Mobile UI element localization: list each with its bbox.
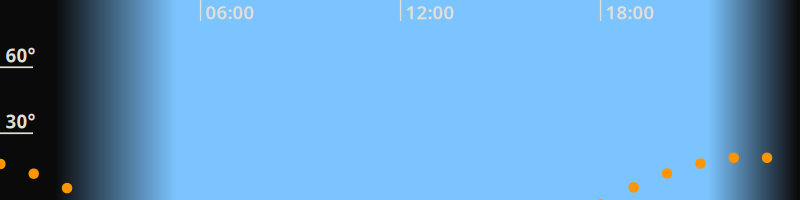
button[interactable]: Hourly temperature forecast [0, 0, 800, 200]
staticText: 06:00 [205, 0, 254, 24]
staticText: 60° [5, 43, 35, 68]
staticText: 18:00 [605, 0, 654, 24]
staticText: 12:00 [405, 0, 454, 24]
staticText: 30° [5, 109, 35, 134]
